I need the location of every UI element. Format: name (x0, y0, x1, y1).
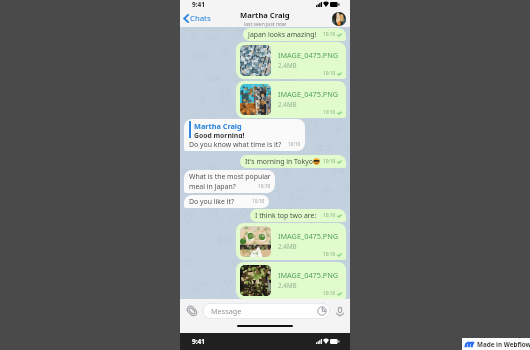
button[interactable]: IMAGE_0475.PNG (236, 81, 346, 118)
staticText: 2.4MB (278, 242, 297, 251)
button[interactable]: It's morning in Tokyo (240, 155, 346, 168)
button[interactable]: I think top two are: (250, 209, 346, 222)
button[interactable]: Japan looks amazing! (243, 28, 346, 41)
staticText: IMAGE_0475.PNG (278, 50, 339, 60)
staticText: 10:10 (258, 183, 271, 190)
staticText: 10:10 (323, 212, 336, 219)
staticText: 10:10 (323, 31, 336, 38)
staticText: Do you know what time is it? (189, 140, 282, 149)
button[interactable]: Record voice message (333, 305, 346, 318)
button[interactable]: Chats (183, 10, 211, 27)
staticText: It's morning in Tokyo (245, 157, 313, 166)
staticText: 10:10 (323, 158, 336, 165)
button[interactable]: IMAGE_0475.PNG (236, 223, 346, 260)
staticText: meal in Japan? (189, 182, 236, 191)
staticText: 10:10 (323, 70, 336, 77)
staticText: 10:10 (252, 198, 265, 205)
staticText: Chats (190, 13, 211, 24)
staticText: 9:41 (192, 337, 205, 346)
staticText: 10:10 (323, 290, 336, 297)
button[interactable]: Do you like it? (184, 195, 269, 208)
staticText: What is the most popular (189, 172, 271, 181)
staticText: 10:10 (288, 141, 301, 148)
button[interactable]: Martha Craig (184, 119, 305, 151)
staticText: Japan looks amazing! (248, 30, 317, 39)
staticText: 2.4MB (278, 281, 297, 290)
button[interactable]: IMAGE_0475.PNG (236, 262, 346, 299)
staticText: Made in Webflow (477, 340, 530, 349)
button[interactable]: IMAGE_0475.PNG (236, 42, 346, 79)
button[interactable]: Attach file (184, 303, 200, 319)
staticText: last seen just now (244, 21, 286, 27)
staticText: 10:10 (323, 251, 336, 258)
staticText: Message (211, 306, 242, 316)
staticText: Martha Craig (240, 10, 290, 20)
staticText: Do you like it? (189, 197, 234, 206)
staticText: 9:41 (192, 0, 205, 9)
button[interactable]: Profile photo (332, 12, 346, 26)
staticText: 10:10 (323, 109, 336, 116)
button[interactable]: Message (203, 303, 330, 319)
staticText: Martha Craig (194, 121, 242, 131)
button[interactable]: What is the most popular (184, 170, 275, 193)
staticText: IMAGE_0475.PNG (278, 270, 339, 280)
staticText: IMAGE_0475.PNG (278, 89, 339, 99)
button[interactable]: Made in Webflow (462, 338, 530, 350)
staticText: Good morning! (194, 131, 245, 138)
button[interactable]: Stickers (317, 306, 327, 316)
staticText: I think top two are: (255, 211, 317, 220)
staticText: 2.4MB (278, 61, 297, 70)
staticText: IMAGE_0475.PNG (278, 231, 339, 241)
staticText: 2.4MB (278, 100, 297, 109)
